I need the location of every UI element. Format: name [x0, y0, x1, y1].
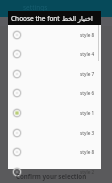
button[interactable]: style 3 [8, 123, 101, 142]
staticText: style 2 [80, 169, 95, 175]
button[interactable]: style 1 [8, 103, 101, 122]
button[interactable]: style 7 [8, 64, 101, 83]
staticText: Choose the font [11, 14, 60, 23]
staticText: settings [23, 3, 48, 12]
staticText: Confirm your selection [16, 172, 87, 180]
staticText: style 8 [80, 32, 95, 38]
staticText: style 1 [80, 110, 95, 116]
button[interactable]: Confirm your selection [0, 169, 112, 183]
staticText: style 7 [80, 71, 95, 77]
staticText: اختيار الخط [62, 14, 93, 23]
button[interactable]: style 8 [8, 142, 101, 161]
staticText: style 3 [80, 130, 95, 136]
button[interactable]: style 2 [8, 162, 101, 181]
button[interactable]: style 6 [8, 83, 101, 102]
staticText: style 4 [80, 51, 95, 57]
button[interactable]: style 4 [8, 44, 101, 63]
staticText: style 8 [80, 149, 95, 155]
button[interactable]: style 8 [8, 25, 101, 44]
staticText: style 6 [80, 90, 95, 96]
